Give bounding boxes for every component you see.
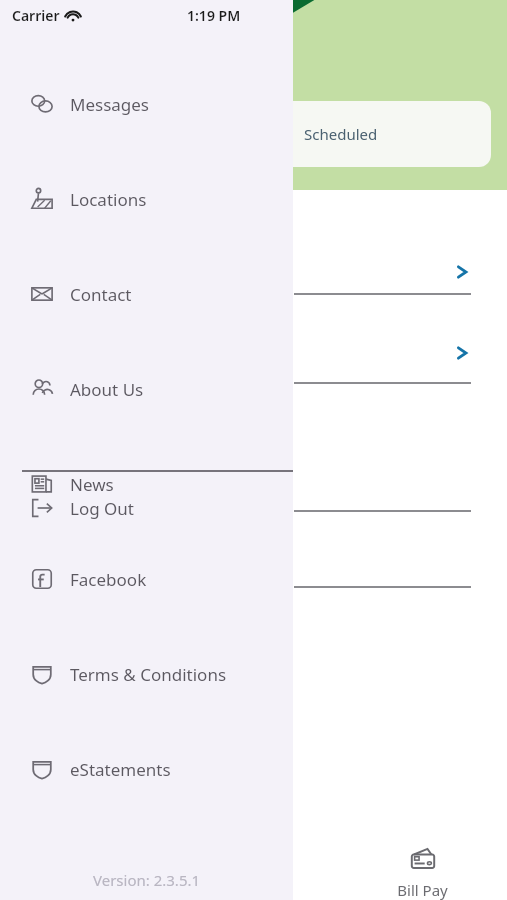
button[interactable]: eStatements — [0, 749, 293, 789]
button[interactable]: Bill Pay — [338, 826, 507, 900]
button[interactable]: News — [0, 464, 293, 504]
staticText: Carrier — [12, 6, 60, 25]
staticText: Bill Pay — [397, 880, 448, 900]
button[interactable]: Messages — [0, 84, 293, 124]
staticText: Contact — [70, 283, 132, 306]
staticText: About Us — [70, 378, 144, 401]
staticText: Messages — [70, 93, 150, 116]
button[interactable]: About Us — [0, 369, 293, 409]
button[interactable]: Facebook — [0, 559, 293, 599]
staticText: Facebook — [70, 568, 147, 591]
staticText: Log Out — [70, 497, 134, 520]
button[interactable]: Scheduled — [300, 120, 382, 148]
button[interactable]: Deposit — [169, 826, 338, 900]
staticText: 1:19 PM — [187, 6, 241, 25]
button[interactable]: Log Out — [0, 488, 293, 528]
staticText: Version: 2.3.5.1 — [93, 870, 201, 890]
staticText: Scheduled — [304, 124, 378, 144]
staticText: eStatements — [70, 758, 171, 781]
button[interactable]: Locations — [0, 179, 293, 219]
button[interactable]: Open details — [452, 343, 472, 363]
staticText: Locations — [70, 188, 147, 211]
staticText: Terms & Conditions — [70, 663, 227, 686]
button[interactable]: Terms & Conditions — [0, 654, 293, 694]
staticText: News — [70, 473, 114, 496]
button[interactable]: Open details — [452, 262, 472, 282]
button[interactable]: Contact — [0, 274, 293, 314]
